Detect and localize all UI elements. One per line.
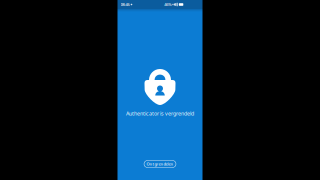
button[interactable]: Ontgrendelen — [144, 160, 176, 167]
staticText: Ontgrendelen — [146, 161, 173, 167]
staticText: Authenticator is vergrendeld — [126, 110, 194, 117]
staticText: 46% — [164, 2, 171, 7]
staticText: 08:46 — [120, 2, 129, 7]
